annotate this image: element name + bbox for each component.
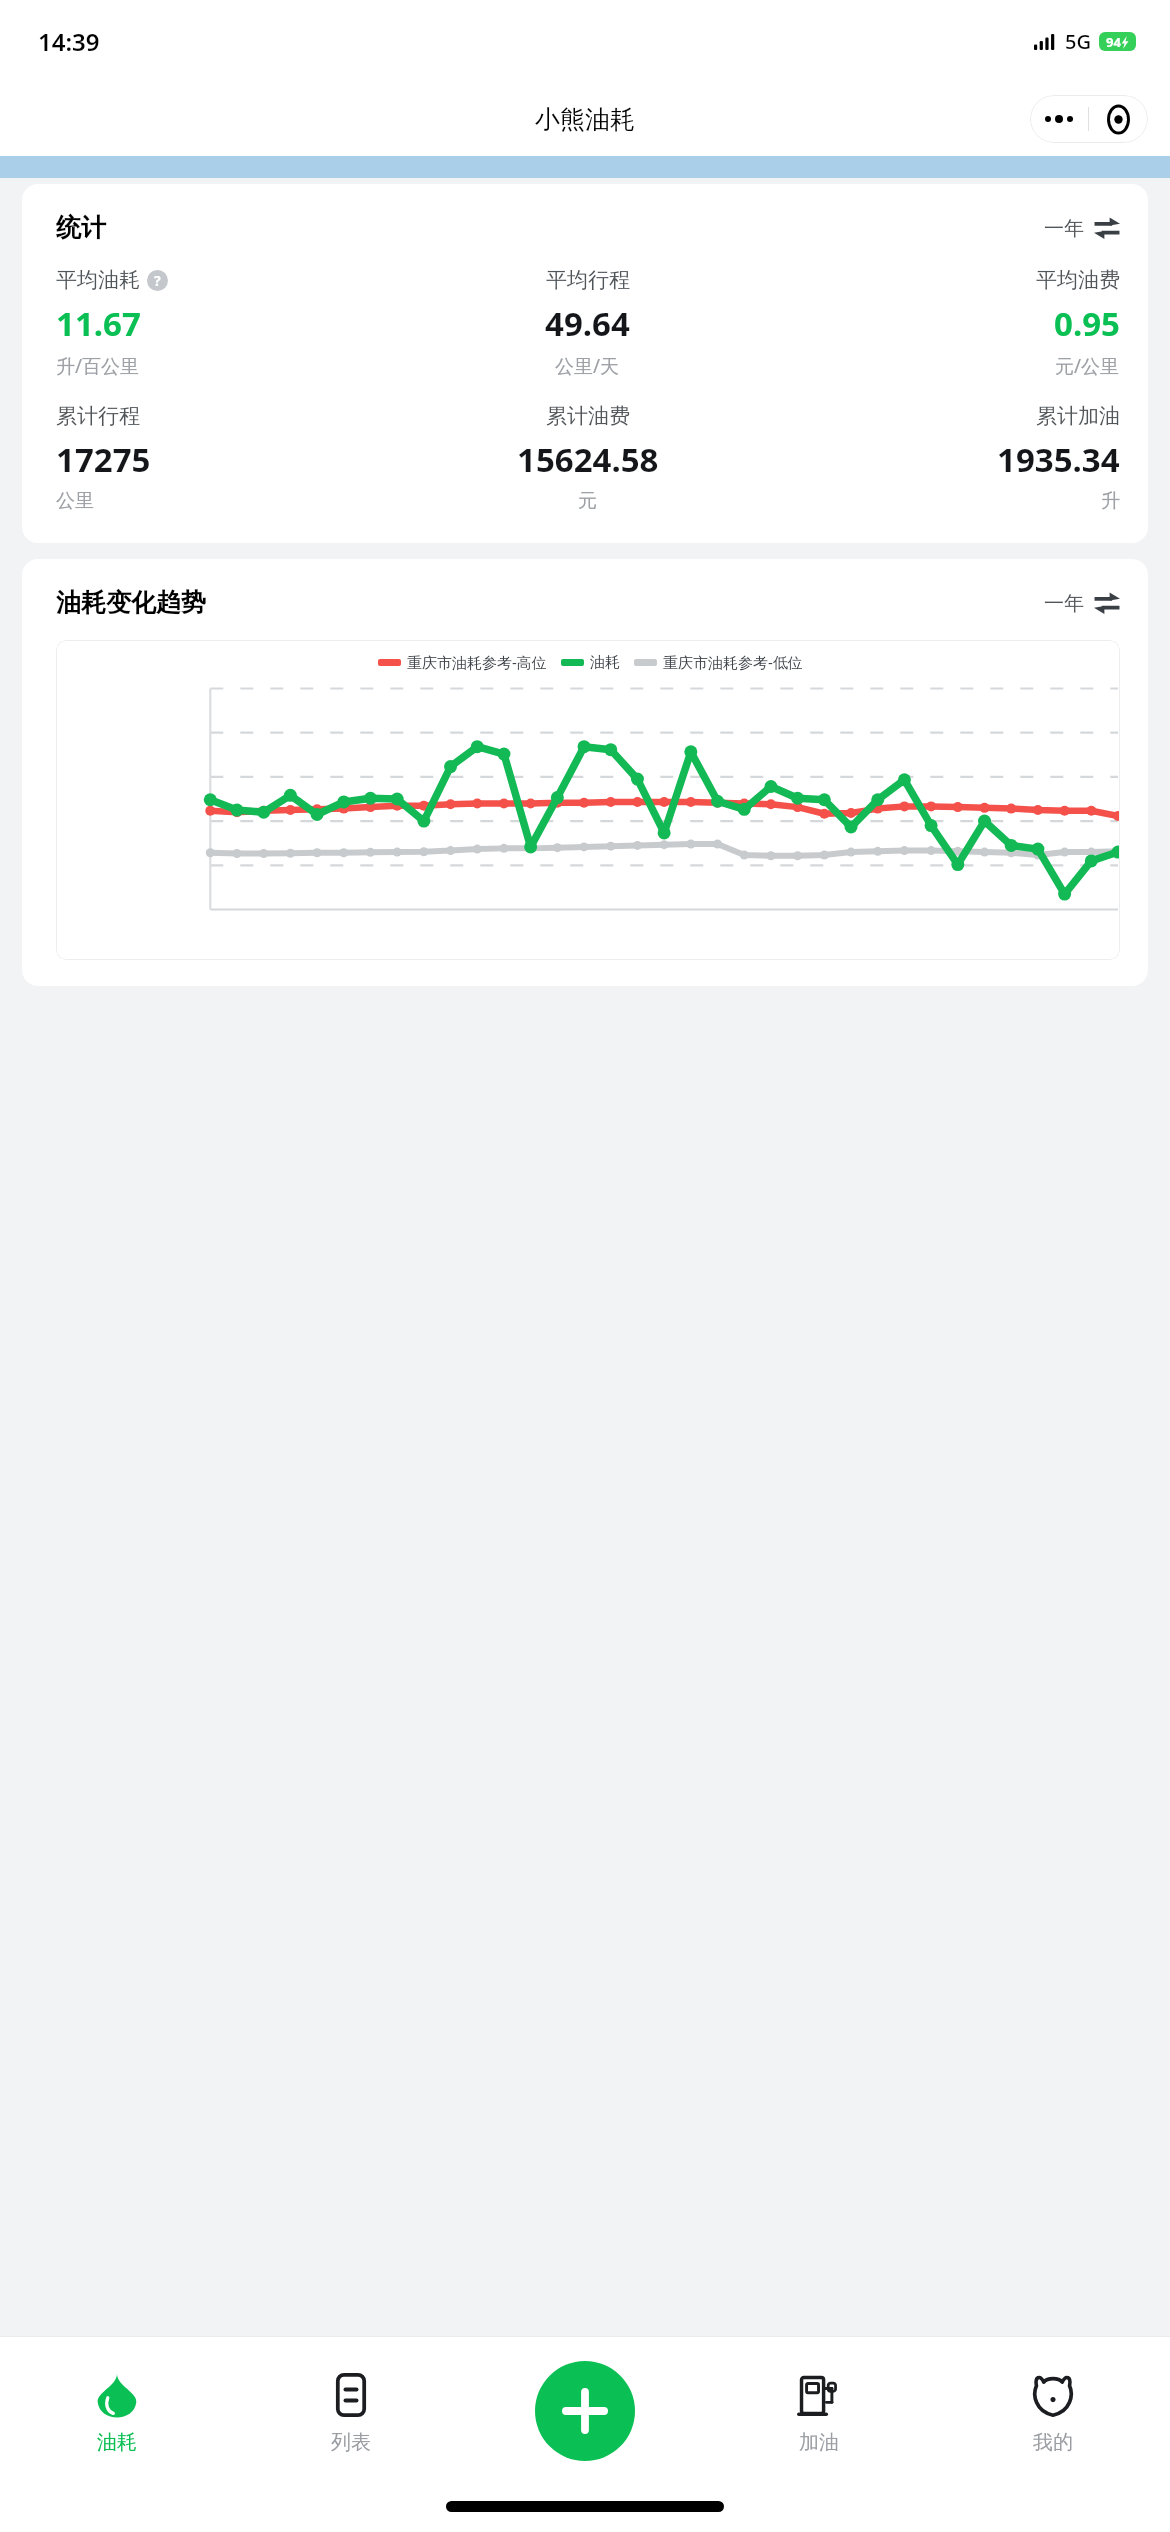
staticText: 元/公里	[1055, 353, 1120, 379]
staticText: 5G	[1065, 28, 1091, 55]
staticText: 重庆市油耗参考-高位	[407, 652, 547, 672]
button[interactable]: 一年	[1044, 215, 1120, 241]
staticText: 平均油费	[1036, 267, 1120, 293]
button[interactable]: Close mini program	[1089, 95, 1148, 143]
staticText: 1935.34	[997, 437, 1120, 482]
staticText: 15624.58	[517, 437, 659, 482]
staticText: 14:39	[38, 25, 100, 58]
button[interactable]: More options	[1030, 95, 1088, 143]
button[interactable]: Help	[147, 270, 168, 291]
staticText: 统计	[56, 212, 106, 243]
staticText: 重庆市油耗参考-低位	[663, 652, 803, 672]
staticText: 一年	[1044, 591, 1084, 616]
staticText: 列表	[331, 2430, 371, 2455]
button[interactable]: 列表	[234, 2336, 468, 2486]
staticText: 公里/天	[555, 353, 620, 379]
staticText: 17275	[56, 437, 151, 482]
staticText: 11.67	[56, 301, 141, 346]
staticText: 平均行程	[546, 267, 630, 293]
staticText: 平均油耗	[56, 267, 140, 293]
staticText: 升/百公里	[56, 353, 140, 379]
staticText: 94	[1106, 33, 1121, 51]
staticText: 累计加油	[1036, 403, 1120, 429]
button[interactable]: Change range	[1094, 215, 1120, 241]
button[interactable]: 统计	[22, 184, 1148, 543]
staticText: 加油	[799, 2430, 839, 2455]
staticText: 0.95	[1054, 301, 1120, 346]
staticText: 49.64	[545, 301, 630, 346]
button[interactable]: 油耗	[0, 2336, 234, 2486]
button[interactable]: 加油	[702, 2336, 936, 2486]
staticText: 元	[578, 489, 597, 513]
button[interactable]: 我的	[936, 2336, 1170, 2486]
staticText: 一年	[1044, 216, 1084, 241]
button[interactable]: Add record	[535, 2361, 635, 2461]
staticText: ?	[154, 271, 161, 290]
button[interactable]: Change range	[1094, 590, 1120, 616]
staticText: 公里	[56, 489, 94, 513]
staticText: 油耗变化趋势	[56, 587, 206, 618]
staticText: 累计行程	[56, 403, 140, 429]
staticText: 小熊油耗	[535, 104, 635, 135]
button[interactable]: 一年	[1044, 590, 1120, 616]
button[interactable]: 油耗变化趋势	[22, 559, 1148, 986]
staticText: 油耗	[590, 653, 620, 672]
staticText: 累计油费	[546, 403, 630, 429]
staticText: 油耗	[97, 2430, 137, 2455]
staticText: 升	[1101, 489, 1120, 513]
staticText: 我的	[1033, 2430, 1073, 2455]
